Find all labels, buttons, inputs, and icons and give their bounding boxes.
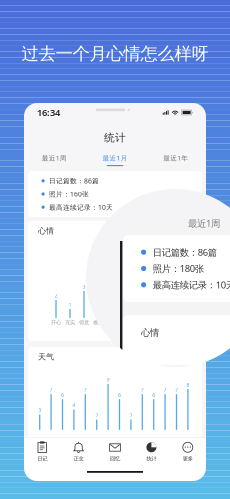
staticText: 7 — [50, 386, 53, 393]
staticText: 难过 — [93, 319, 103, 326]
staticText: 照片：180张 — [153, 262, 204, 275]
staticText: 最近1月 — [102, 154, 127, 162]
staticText: 4 — [72, 402, 75, 409]
staticText: 最近1周 — [188, 217, 220, 229]
staticText: 7 — [84, 386, 87, 393]
staticText: 7 — [175, 386, 178, 393]
staticText: 得意 — [79, 319, 89, 326]
button[interactable]: 日记 — [24, 441, 60, 462]
staticText: 7 — [164, 386, 167, 393]
button[interactable]: 统计 — [133, 441, 170, 462]
staticText: 更多 — [183, 455, 193, 462]
staticText: 日记 — [37, 455, 47, 462]
button[interactable]: 更多 — [170, 441, 206, 462]
staticText: 3 — [38, 407, 41, 414]
staticText: 心情 — [38, 226, 54, 236]
button[interactable]: 回忆 — [97, 441, 133, 462]
staticText: 回忆 — [110, 455, 120, 462]
staticText: 2 — [95, 412, 98, 419]
staticText: 6 — [118, 391, 121, 398]
staticText: 统计 — [146, 455, 156, 462]
staticText: 心情 — [141, 327, 159, 338]
staticText: 3 — [82, 283, 85, 290]
staticText: 2 — [129, 412, 132, 419]
staticText: 1 — [68, 301, 71, 308]
button[interactable]: 最近1年 — [145, 154, 206, 166]
button[interactable]: 正念 — [60, 441, 97, 462]
staticText: 6 — [152, 391, 155, 398]
staticText: 日记篇数：86篇 — [153, 246, 217, 258]
staticText: 2 — [54, 292, 57, 299]
staticText: 最近1年 — [163, 154, 188, 162]
button[interactable]: 最近1周 — [24, 154, 85, 166]
staticText: 天气 — [38, 352, 54, 362]
staticText: 8 — [186, 381, 189, 388]
staticText: 日记篇数：86篇 — [49, 176, 99, 185]
staticText: 充实 — [65, 319, 75, 326]
staticText: 16:34 — [37, 106, 60, 119]
button[interactable]: 最近1月 — [85, 154, 145, 166]
staticText: 开心 — [51, 319, 61, 326]
staticText: 6 — [61, 391, 64, 398]
staticText: 统计 — [104, 131, 126, 144]
staticText: 最近1周 — [42, 154, 67, 162]
staticText: 过去一个月心情怎么样呀 — [21, 43, 208, 64]
staticText: 9 — [107, 376, 110, 383]
staticText: 正念 — [74, 455, 84, 462]
staticText: 7 — [141, 386, 144, 393]
staticText: 最高连续记录：10天 — [153, 279, 230, 291]
staticText: 最高连续记录：10天 — [49, 203, 113, 212]
staticText: 照片：160张 — [49, 190, 89, 198]
